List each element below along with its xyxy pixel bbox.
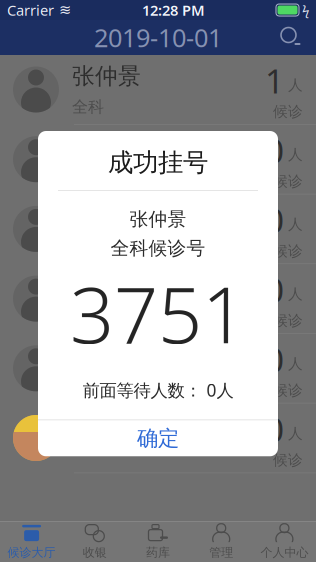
staticText: 个人中心: [260, 545, 308, 560]
staticText: 全科: [72, 376, 104, 396]
staticText: 3751: [70, 262, 246, 364]
staticText: 0: [265, 267, 284, 312]
staticText: 人: [288, 355, 303, 373]
staticText: 前面等待人数： 0人: [82, 378, 233, 401]
staticText: 药库: [146, 545, 170, 560]
staticText: 人: [288, 424, 303, 442]
staticText: 候诊: [273, 172, 303, 190]
button[interactable]: 管理: [190, 521, 253, 562]
staticText: ≋: [59, 2, 71, 18]
button[interactable]: Search: [275, 21, 307, 53]
staticText: Carrier: [7, 0, 54, 20]
button[interactable]: 个人中心: [253, 521, 316, 562]
staticText: ϟ: [302, 1, 309, 19]
button[interactable]: 收银: [63, 521, 126, 562]
button[interactable]: King: [0, 403, 316, 473]
staticText: 2019-10-01: [94, 21, 222, 54]
staticText: 12:28 PM: [142, 0, 205, 20]
button[interactable]: [0, 194, 316, 264]
staticText: 全科候诊号: [110, 237, 205, 260]
button[interactable]: 药库: [126, 521, 190, 562]
staticText: 候诊: [273, 381, 303, 399]
staticText: 确定: [137, 425, 179, 451]
staticText: 收银: [83, 545, 107, 560]
button[interactable]: 确定: [38, 420, 278, 456]
button[interactable]: 张仲景: [0, 55, 316, 125]
staticText: 0: [265, 128, 284, 172]
staticText: 张仲景: [129, 208, 186, 231]
staticText: 候诊: [273, 103, 303, 121]
staticText: 全科: [72, 97, 104, 117]
button[interactable]: 候诊大厅: [0, 521, 63, 562]
staticText: 人: [288, 146, 303, 164]
button[interactable]: [0, 264, 316, 334]
staticText: King: [72, 409, 120, 439]
staticText: 候诊大厅: [8, 545, 56, 560]
staticText: 张仲景: [72, 62, 141, 90]
staticText: 候诊: [273, 242, 303, 260]
staticText: 成功挂号: [108, 147, 208, 178]
staticText: 0: [265, 337, 284, 381]
staticText: 候诊: [273, 451, 303, 469]
staticText: 人: [288, 285, 303, 303]
button[interactable]: [0, 125, 316, 194]
staticText: 1: [265, 58, 284, 103]
staticText: 人: [288, 215, 303, 233]
staticText: 管理: [209, 545, 233, 560]
staticText: 李医: [72, 341, 118, 369]
staticText: 人: [288, 76, 303, 94]
staticText: 候诊: [273, 312, 303, 330]
staticText: 0: [265, 198, 284, 242]
button[interactable]: 李医: [0, 334, 316, 403]
staticText: 0: [265, 407, 284, 451]
